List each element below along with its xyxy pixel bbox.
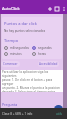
staticText: Comenzar: [3, 62, 18, 66]
staticText: horas: [38, 52, 46, 56]
button[interactable]: minutos: [4, 52, 22, 56]
staticText: utils: [56, 112, 62, 116]
staticText: un punto. 2. Mueva el punto a la posicio…: [2, 86, 60, 90]
staticText: Pregunta: [2, 102, 18, 107]
button[interactable]: More options: [60, 5, 67, 12]
button[interactable]: Save: [53, 5, 60, 12]
button[interactable]: milisegundos: [4, 46, 29, 50]
staticText: No hay puntos seleccionados: [4, 29, 46, 33]
staticText: AutoClick: [2, 6, 20, 11]
staticText: Para utilizar la aplicacion siga los sig…: [2, 70, 62, 78]
staticText: Accesibilidad: [39, 62, 58, 66]
staticText: Clase 8 + 68% + 1 info: [2, 112, 33, 116]
staticText: deseada 3. Seleccione el tiempo entre ca…: [2, 90, 62, 92]
button[interactable]: Comenzar: [1, 61, 20, 67]
button[interactable]: Pregunta: [1, 101, 19, 108]
button[interactable]: segundos: [32, 46, 52, 50]
staticText: Puntos a dar click: [4, 21, 37, 26]
staticText: minutos: [10, 52, 22, 56]
staticText: milisegundos: [10, 46, 29, 50]
staticText: pasos: 1. De click en el boton + para ag…: [2, 78, 62, 86]
button[interactable]: Accesibilidad: [38, 61, 59, 67]
button[interactable]: horas: [32, 52, 46, 56]
button[interactable]: Add point: [46, 5, 53, 12]
button[interactable]: Add: [54, 105, 63, 114]
staticText: segundos: [38, 46, 52, 50]
staticText: Tiempo: [4, 38, 19, 43]
